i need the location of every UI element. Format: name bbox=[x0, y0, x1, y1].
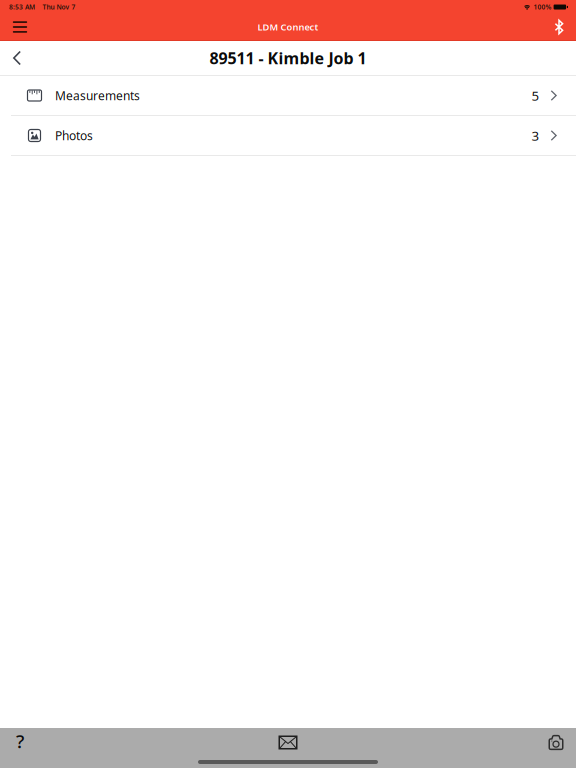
staticText: ? bbox=[16, 729, 24, 753]
staticText: 89511 - Kimble Job 1 bbox=[209, 47, 366, 69]
button[interactable]: Measurements bbox=[0, 76, 576, 116]
staticText: LDM Connect bbox=[257, 21, 318, 33]
button[interactable]: Menu bbox=[2, 14, 38, 40]
staticText: 8:53 AM bbox=[9, 3, 35, 11]
button[interactable]: Mail bbox=[268, 728, 308, 757]
staticText: Measurements bbox=[55, 87, 140, 103]
button[interactable]: Help bbox=[0, 728, 40, 757]
button[interactable]: Camera bbox=[536, 728, 576, 757]
staticText: Photos bbox=[55, 127, 93, 143]
staticText: 100% bbox=[534, 3, 552, 11]
staticText: 3 bbox=[531, 127, 539, 144]
button[interactable]: Photos bbox=[0, 116, 576, 156]
button[interactable]: Bluetooth bbox=[544, 14, 574, 40]
staticText: Thu Nov 7 bbox=[42, 3, 75, 11]
button[interactable]: Back bbox=[4, 41, 29, 75]
staticText: 5 bbox=[531, 87, 539, 104]
